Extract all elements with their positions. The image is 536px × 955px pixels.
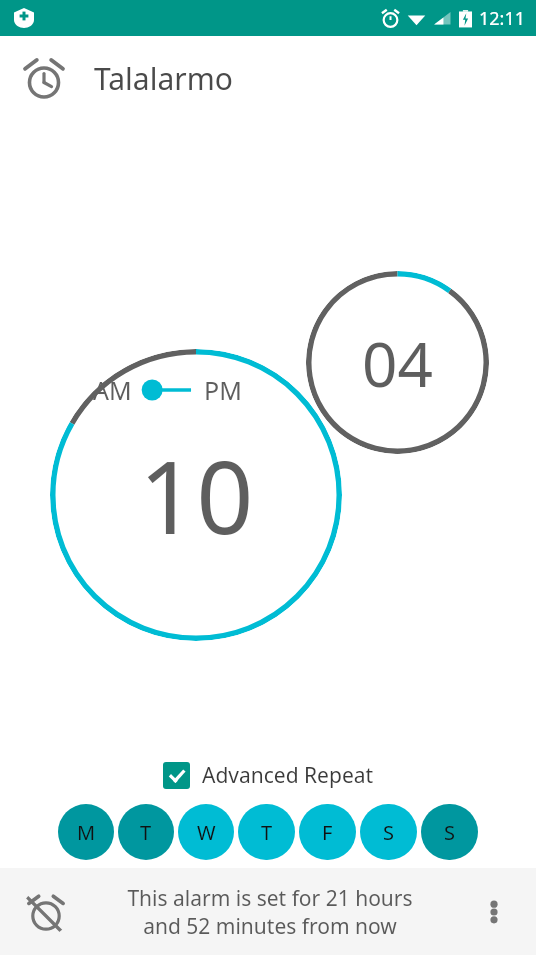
staticText: 12:11 <box>479 6 526 31</box>
staticText: PM <box>204 373 242 407</box>
button[interactable]: Advanced Repeat <box>163 761 374 790</box>
button[interactable]: W <box>178 804 234 860</box>
staticText: Talalarmo <box>94 58 233 99</box>
button[interactable]: Alarm off <box>22 888 70 936</box>
staticText: T <box>261 819 273 846</box>
staticText: W <box>197 819 216 846</box>
button[interactable]: 10 <box>50 349 342 641</box>
button[interactable]: More options <box>470 888 518 936</box>
staticText: 04 <box>362 321 433 405</box>
button[interactable]: M <box>58 804 114 860</box>
staticText: 10 <box>139 427 254 563</box>
staticText: Advanced Repeat <box>202 761 374 790</box>
button[interactable]: T <box>238 804 295 860</box>
staticText: S <box>444 819 455 846</box>
button[interactable]: AM <box>93 373 242 407</box>
staticText: T <box>140 819 152 846</box>
button[interactable]: S <box>360 804 417 860</box>
staticText: This alarm is set for 21 hours and 52 mi… <box>127 884 413 940</box>
button[interactable]: F <box>299 804 356 860</box>
other: Alarm <box>22 57 66 101</box>
button[interactable]: T <box>118 804 174 860</box>
staticText: AM <box>93 373 132 407</box>
button[interactable]: 04 <box>306 271 489 454</box>
staticText: F <box>322 819 333 846</box>
button[interactable]: S <box>421 804 478 860</box>
staticText: S <box>383 819 394 846</box>
staticText: M <box>77 819 96 846</box>
